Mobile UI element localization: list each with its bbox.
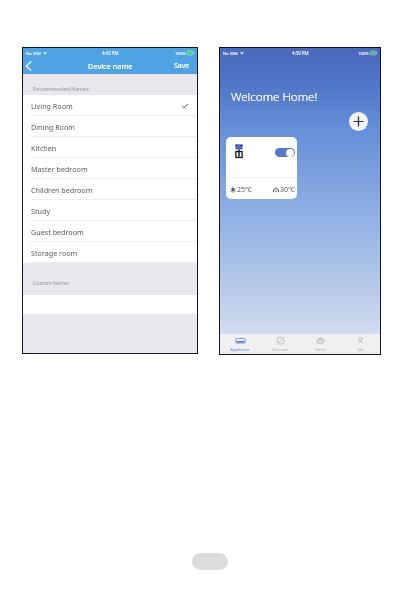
staticText: 100%	[358, 50, 369, 56]
button[interactable]: Guest bedroom	[23, 221, 197, 242]
staticText: Device name	[88, 61, 133, 71]
staticText: 25℃	[237, 185, 252, 195]
staticText: Welcome Home!	[231, 89, 318, 105]
staticText: 4:39 PM	[292, 50, 309, 56]
staticText: Guest bedroom	[31, 227, 84, 237]
staticText: No SIM	[223, 50, 238, 56]
button[interactable]: Power toggle	[275, 148, 295, 157]
staticText: No SIM	[26, 50, 41, 56]
staticText: Living Room	[31, 101, 73, 111]
button[interactable]: Master bedroom	[23, 158, 197, 179]
staticText: Study	[31, 206, 51, 216]
staticText: Master bedroom	[31, 164, 88, 174]
staticText: Discover	[272, 347, 289, 353]
button[interactable]: Kitchen	[23, 137, 197, 158]
staticText: 4:42 PM	[102, 50, 119, 56]
staticText: Save	[174, 61, 190, 71]
staticText: Recommended Names:	[33, 85, 90, 92]
button[interactable]: Discover	[260, 334, 300, 354]
button[interactable]: Study	[23, 200, 197, 221]
staticText: Storage room	[31, 248, 78, 258]
button[interactable]: Living Room	[23, 95, 197, 116]
staticText: 30℃	[280, 185, 295, 195]
button[interactable]: Save	[170, 57, 197, 74]
button[interactable]: Video	[300, 334, 340, 354]
button[interactable]: Power toggle	[226, 137, 297, 199]
staticText: Video	[314, 347, 326, 353]
button[interactable]: Me	[340, 334, 380, 354]
staticText: Appliance	[230, 347, 250, 353]
button[interactable]: Dining Room	[23, 116, 197, 137]
button[interactable]: Back	[23, 57, 36, 74]
staticText: Custom Name:	[33, 279, 70, 286]
button[interactable]: Children bedroom	[23, 179, 197, 200]
button[interactable]: Storage room	[23, 242, 197, 263]
staticText: Children bedroom	[31, 185, 93, 195]
staticText: Me	[357, 347, 364, 353]
button[interactable]: Add device	[349, 112, 368, 131]
staticText: 100%	[175, 50, 186, 56]
staticText: Kitchen	[31, 143, 57, 153]
button[interactable]: Appliance	[220, 334, 260, 354]
staticText: Dining Room	[31, 122, 76, 132]
